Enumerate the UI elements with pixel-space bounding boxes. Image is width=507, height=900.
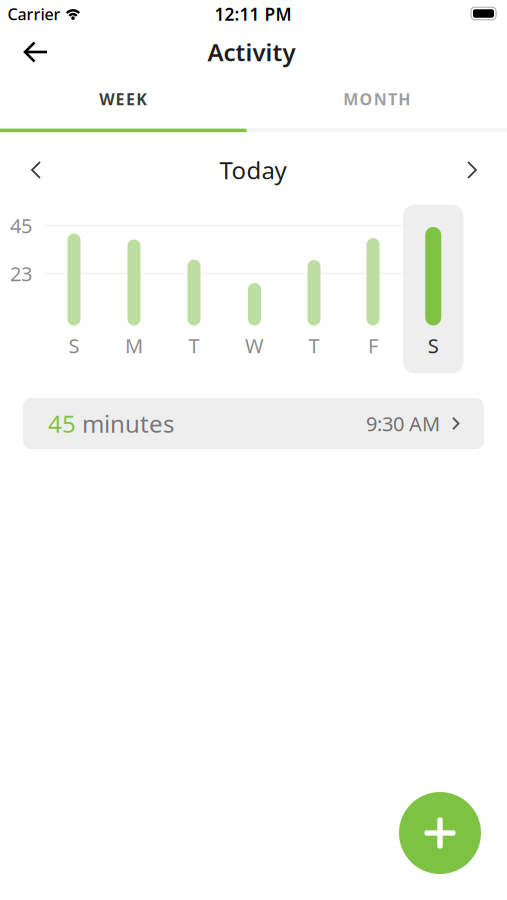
staticText: 45 (48, 408, 76, 439)
staticText: M (125, 332, 143, 359)
staticText: Today (219, 154, 286, 186)
staticText: M (343, 88, 358, 110)
button[interactable]: W (0, 77, 250, 121)
button[interactable]: Saturday, selected (403, 204, 463, 373)
staticText: minutes (76, 408, 174, 439)
staticText: S (68, 332, 79, 359)
staticText: 12:11 PM (214, 2, 291, 25)
staticText: T (388, 88, 397, 110)
staticText: 9:30 AM (366, 410, 440, 437)
staticText: W (245, 332, 264, 359)
staticText: S (428, 332, 439, 359)
staticText: F (368, 332, 378, 359)
staticText: T (308, 332, 319, 359)
staticText: 45 (10, 212, 32, 239)
button[interactable]: Back (14, 30, 58, 74)
button[interactable]: Add activity (399, 792, 481, 874)
staticText: E (116, 88, 125, 110)
staticText: T (188, 332, 199, 359)
staticText: Carrier (7, 3, 60, 25)
staticText: W (99, 88, 114, 110)
staticText: H (398, 88, 410, 110)
button[interactable]: Next day (450, 148, 494, 192)
staticText: N (374, 88, 387, 110)
staticText: Activity (207, 36, 295, 68)
button[interactable]: 45 (23, 398, 484, 449)
staticText: E (126, 88, 135, 110)
staticText: K (136, 88, 147, 110)
staticText: 23 (10, 260, 32, 287)
button[interactable]: M (250, 77, 503, 121)
button[interactable]: Previous day (14, 148, 58, 192)
staticText: O (359, 88, 372, 110)
